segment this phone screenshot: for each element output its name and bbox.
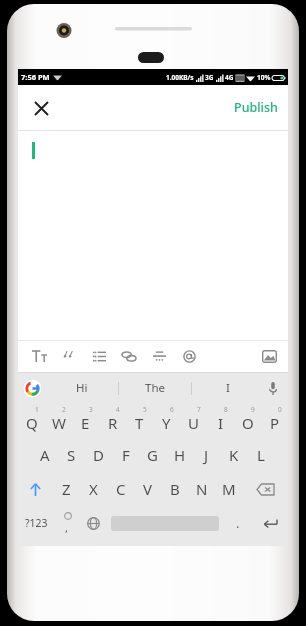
button[interactable]: 6 <box>153 404 180 438</box>
button[interactable]: Z <box>53 472 80 506</box>
button[interactable]: F <box>112 438 139 472</box>
button[interactable]: ?123 <box>18 506 55 540</box>
button[interactable]: Shift <box>18 472 53 506</box>
button[interactable]: K <box>220 438 247 472</box>
button[interactable]: Text style <box>24 341 54 371</box>
staticText: Q <box>26 413 38 433</box>
staticText: 3G <box>205 73 214 82</box>
staticText: Publish <box>234 99 278 116</box>
button[interactable]: Emoji and comma <box>55 506 80 540</box>
button[interactable]: Voice input <box>263 378 283 398</box>
staticText: 0 <box>278 405 282 414</box>
staticText: , <box>65 520 68 535</box>
staticText: 10% <box>257 73 271 82</box>
button[interactable]: B <box>161 472 188 506</box>
staticText: 4 <box>116 405 120 414</box>
staticText: 8 <box>224 405 228 414</box>
button[interactable]: I <box>192 372 264 404</box>
button[interactable]: 3 <box>72 404 99 438</box>
staticText: H <box>174 445 186 465</box>
button[interactable]: . <box>223 506 252 540</box>
staticText: F <box>122 445 130 465</box>
staticText: P <box>270 413 280 433</box>
button[interactable]: N <box>188 472 215 506</box>
button[interactable]: Space <box>107 506 223 540</box>
staticText: . <box>236 514 240 532</box>
staticText: W <box>52 413 66 433</box>
button[interactable]: 2 <box>45 404 72 438</box>
button[interactable]: M <box>215 472 242 506</box>
button[interactable]: 8 <box>207 404 234 438</box>
button[interactable]: Close <box>24 91 58 125</box>
button[interactable]: V <box>134 472 161 506</box>
button[interactable]: Link <box>114 341 144 371</box>
button[interactable]: Hi <box>46 372 118 404</box>
button[interactable]: Insert image <box>254 341 284 371</box>
staticText: 1.00KB/s <box>166 73 194 82</box>
button[interactable]: The <box>119 372 191 404</box>
button[interactable]: 4 <box>99 404 126 438</box>
staticText: U <box>188 413 199 433</box>
button[interactable]: Change language <box>80 506 107 540</box>
button[interactable]: List <box>84 341 114 371</box>
button[interactable]: Enter <box>252 506 288 540</box>
button[interactable]: 9 <box>234 404 261 438</box>
button[interactable]: C <box>107 472 134 506</box>
staticText: I <box>226 380 230 396</box>
staticText: 1 <box>35 405 39 414</box>
button[interactable]: 5 <box>126 404 153 438</box>
staticText: T <box>135 413 144 433</box>
staticText: 5 <box>143 405 147 414</box>
staticText: V <box>143 479 153 499</box>
button[interactable]: Mention <box>174 341 204 371</box>
staticText: I <box>218 413 224 433</box>
staticText: ?123 <box>25 516 48 530</box>
staticText: M <box>222 479 236 499</box>
staticText: 7:56 PM <box>21 72 50 82</box>
button[interactable]: Backspace <box>242 472 288 506</box>
button[interactable]: Divider <box>144 341 174 371</box>
button[interactable]: H <box>166 438 193 472</box>
staticText: J <box>204 445 209 465</box>
staticText: O <box>242 413 254 433</box>
staticText: Hi <box>76 380 88 396</box>
staticText: C <box>116 479 126 499</box>
staticText: Y <box>162 413 171 433</box>
button[interactable]: S <box>58 438 85 472</box>
button[interactable]: Publish <box>224 91 288 124</box>
button[interactable]: 0 <box>261 404 288 438</box>
button[interactable]: J <box>193 438 220 472</box>
staticText: E <box>81 413 90 433</box>
staticText: The <box>145 380 165 396</box>
button[interactable]: 1 <box>18 404 45 438</box>
button[interactable]: L <box>247 438 274 472</box>
button[interactable]: D <box>85 438 112 472</box>
button[interactable]: G <box>139 438 166 472</box>
staticText: 2 <box>62 405 66 414</box>
button[interactable]: A <box>31 438 58 472</box>
button[interactable]: Google <box>23 379 42 398</box>
staticText: D <box>93 445 104 465</box>
staticText: L <box>257 445 265 465</box>
staticText: 4G <box>225 73 234 82</box>
button[interactable]: X <box>80 472 107 506</box>
staticText: B <box>170 479 180 499</box>
staticText: 9 <box>251 405 255 414</box>
staticText: R <box>108 413 118 433</box>
button[interactable]: Quote <box>54 341 84 371</box>
staticText: A <box>40 445 50 465</box>
staticText: 3 <box>89 405 93 414</box>
staticText: Z <box>62 479 71 499</box>
staticText: X <box>89 479 98 499</box>
staticText: S <box>67 445 76 465</box>
staticText: G <box>147 445 158 465</box>
button[interactable]: 7 <box>180 404 207 438</box>
staticText: K <box>229 445 239 465</box>
staticText: 7 <box>197 405 201 414</box>
staticText: N <box>196 479 208 499</box>
staticText: 6 <box>170 405 174 414</box>
